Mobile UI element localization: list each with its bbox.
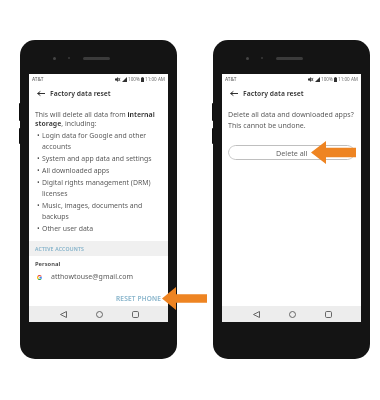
- staticText: •: [37, 131, 40, 140]
- staticText: 11:00 AM: [338, 76, 359, 82]
- button[interactable]: Back: [35, 88, 46, 99]
- staticText: All downloaded apps: [42, 166, 110, 175]
- staticText: 11:00 AM: [145, 76, 166, 82]
- staticText: atthowtouse@gmail.com: [51, 272, 133, 282]
- staticText: •: [37, 178, 40, 187]
- staticText: Personal: [35, 260, 61, 268]
- button[interactable]: Back: [228, 88, 239, 99]
- staticText: Digital rights management (DRM) licenses: [42, 178, 162, 198]
- button[interactable]: Home: [91, 306, 107, 322]
- staticText: Other user data: [42, 224, 94, 233]
- staticText: •: [37, 224, 40, 233]
- staticText: Login data for Google and other accounts: [42, 131, 162, 151]
- staticText: 100%: [321, 76, 333, 82]
- button[interactable]: Recents: [127, 306, 143, 322]
- button[interactable]: RESET PHONE: [116, 292, 168, 306]
- staticText: •: [37, 201, 40, 210]
- staticText: This will delete all data from internal …: [35, 110, 162, 128]
- staticText: 100%: [128, 76, 140, 82]
- staticText: Music, images, documents and backups: [42, 201, 162, 221]
- button[interactable]: Back: [248, 306, 264, 322]
- button[interactable]: Delete all: [228, 145, 355, 160]
- staticText: AT&T: [32, 76, 44, 83]
- staticText: Factory data reset: [50, 89, 111, 98]
- staticText: AT&T: [225, 76, 237, 83]
- staticText: •: [37, 166, 40, 175]
- button[interactable]: Recents: [320, 306, 336, 322]
- staticText: Delete all: [276, 148, 308, 158]
- staticText: Factory data reset: [243, 89, 304, 98]
- staticText: System and app data and settings: [42, 154, 152, 163]
- button[interactable]: Back: [55, 306, 71, 322]
- staticText: Delete all data and downloaded apps? Thi…: [228, 109, 354, 130]
- staticText: •: [37, 154, 40, 163]
- staticText: ACTIVE ACCOUNTS: [35, 245, 85, 252]
- staticText: RESET PHONE: [116, 294, 162, 303]
- button[interactable]: Home: [284, 306, 300, 322]
